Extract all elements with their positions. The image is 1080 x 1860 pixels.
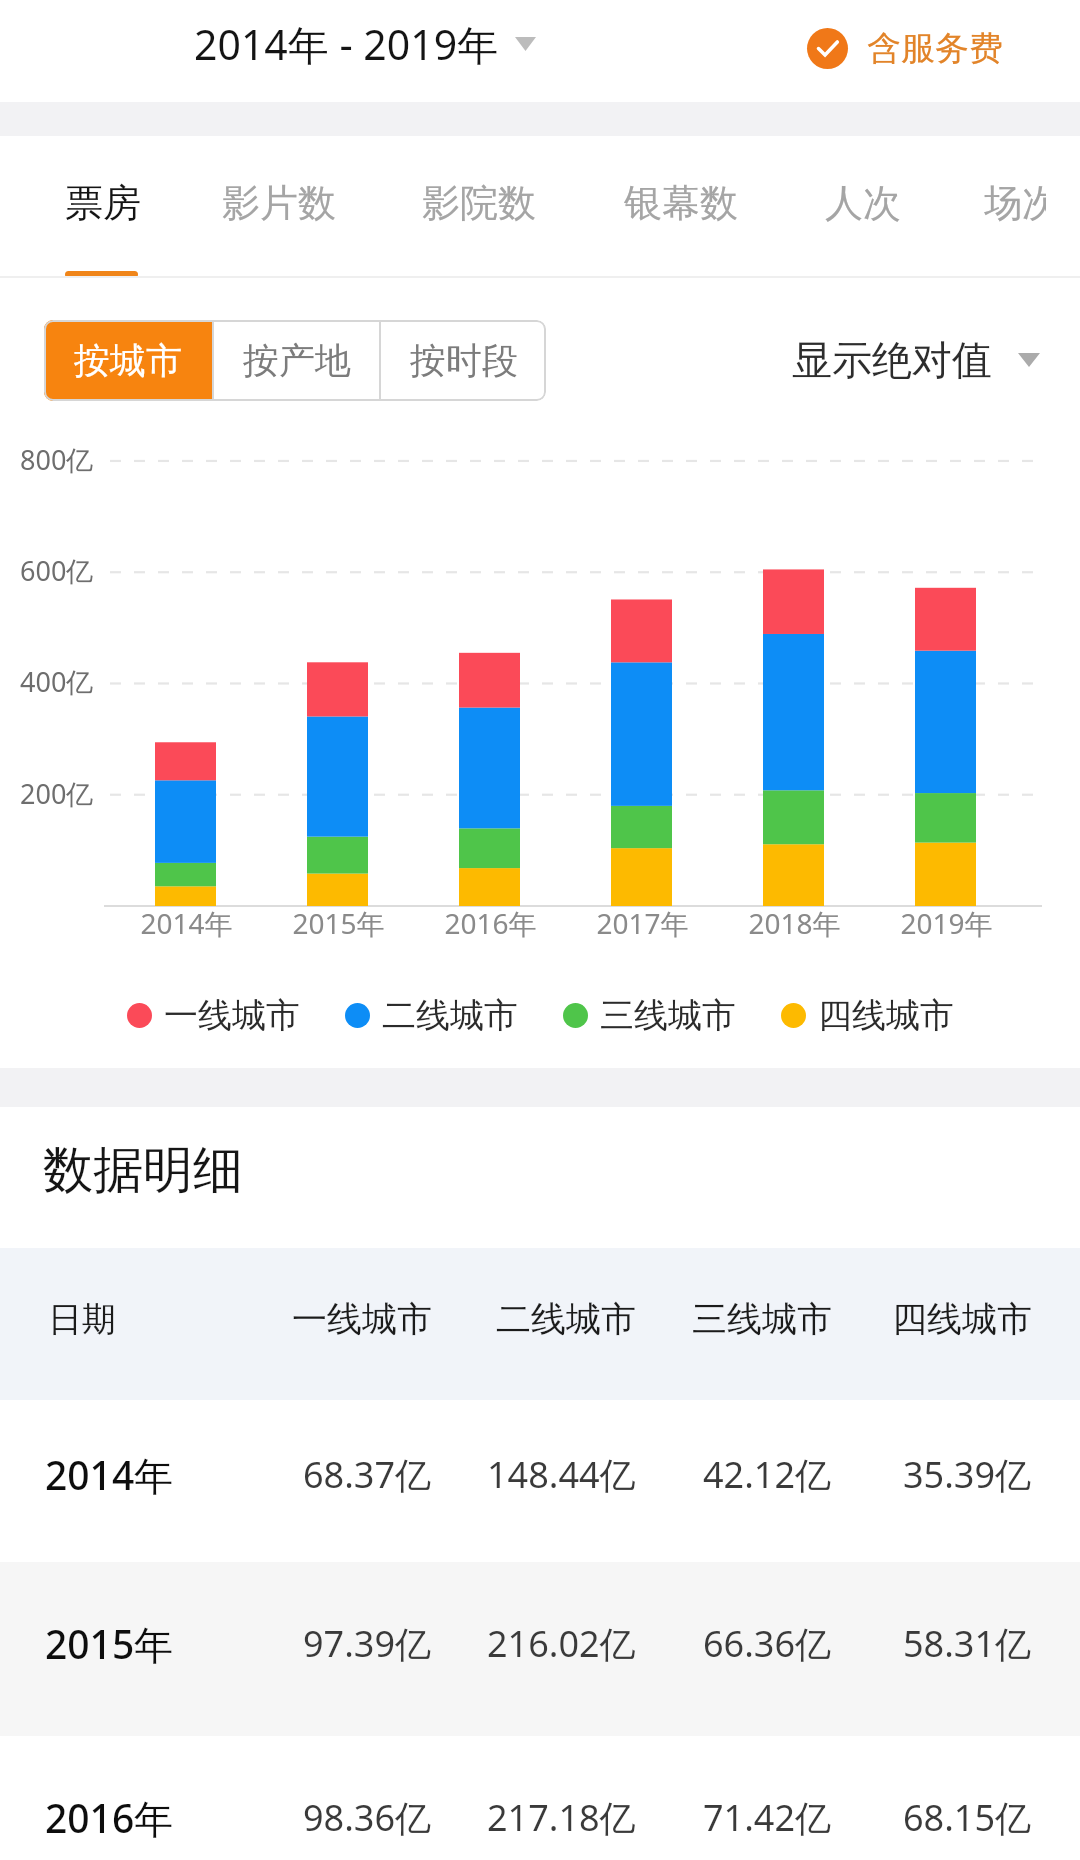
staticText: 68.15亿 (903, 1793, 1032, 1842)
staticText: 216.02亿 (487, 1619, 636, 1668)
button[interactable]: 人次 (803, 150, 923, 260)
button[interactable]: 三线城市 (563, 994, 736, 1037)
staticText: 含服务费 (867, 27, 1003, 70)
staticText: 97.39亿 (303, 1619, 432, 1668)
staticText: 三线城市 (692, 1297, 832, 1341)
button[interactable]: 按时段 (381, 320, 546, 401)
staticText: 二线城市 (382, 994, 518, 1037)
staticText: 显示绝对值 (792, 335, 992, 385)
button[interactable]: 2014年 - 2019年 (182, 0, 548, 88)
staticText: 票房 (65, 179, 141, 227)
staticText: 四线城市 (892, 1297, 1032, 1341)
staticText: 148.44亿 (487, 1450, 636, 1499)
button[interactable]: 按产地 (214, 320, 379, 401)
staticText: 场次 (984, 179, 1046, 227)
button[interactable]: 四线城市 (781, 994, 954, 1037)
staticText: 2016年 (45, 1791, 174, 1844)
button[interactable]: 2016年 (0, 1736, 1080, 1860)
staticText: 按产地 (243, 338, 351, 383)
staticText: 66.36亿 (703, 1619, 832, 1668)
button[interactable]: 按城市 (44, 320, 212, 401)
staticText: 数据明细 (43, 1139, 243, 1202)
staticText: 2019年 (900, 904, 993, 942)
staticText: 42.12亿 (703, 1450, 832, 1499)
staticText: 银幕数 (624, 179, 738, 227)
staticText: 四线城市 (818, 994, 954, 1037)
button[interactable]: 2015年 (0, 1562, 1080, 1736)
staticText: 2016年 (444, 904, 537, 942)
button[interactable]: 二线城市 (345, 994, 518, 1037)
staticText: 200亿 (20, 775, 94, 812)
button[interactable]: 显示绝对值 (780, 325, 1052, 395)
button[interactable]: 银幕数 (602, 150, 760, 260)
staticText: 71.42亿 (703, 1793, 832, 1842)
staticText: 三线城市 (600, 994, 736, 1037)
staticText: 2015年 (45, 1617, 174, 1670)
staticText: 2017年 (596, 904, 689, 942)
staticText: 400亿 (20, 663, 94, 700)
staticText: 2015年 (292, 904, 385, 942)
staticText: 一线城市 (292, 1297, 432, 1341)
staticText: 800亿 (20, 441, 94, 478)
staticText: 按时段 (410, 338, 518, 383)
staticText: 2018年 (748, 904, 841, 942)
button[interactable]: 票房 (43, 150, 163, 260)
button[interactable]: 2014年 (0, 1400, 1080, 1562)
staticText: 二线城市 (496, 1297, 636, 1341)
staticText: 人次 (825, 179, 901, 227)
button[interactable]: 含服务费 (795, 15, 1015, 82)
button[interactable]: 影院数 (400, 150, 558, 260)
button[interactable]: 场次 (962, 150, 1046, 260)
staticText: 2014年 - 2019年 (194, 16, 499, 72)
staticText: 98.36亿 (303, 1793, 432, 1842)
staticText: 影院数 (422, 179, 536, 227)
staticText: 600亿 (20, 552, 94, 589)
staticText: 35.39亿 (903, 1450, 1032, 1499)
staticText: 日期 (48, 1298, 116, 1341)
staticText: 按城市 (74, 338, 182, 383)
staticText: 影片数 (222, 179, 336, 227)
staticText: 一线城市 (164, 994, 300, 1037)
staticText: 2014年 (45, 1448, 174, 1501)
button[interactable]: 影片数 (200, 150, 358, 260)
staticText: 217.18亿 (487, 1793, 636, 1842)
staticText: 68.37亿 (303, 1450, 432, 1499)
button[interactable]: 一线城市 (127, 994, 300, 1037)
staticText: 2014年 (140, 904, 233, 942)
staticText: 58.31亿 (903, 1619, 1032, 1668)
other: 含服务费 (807, 28, 848, 69)
